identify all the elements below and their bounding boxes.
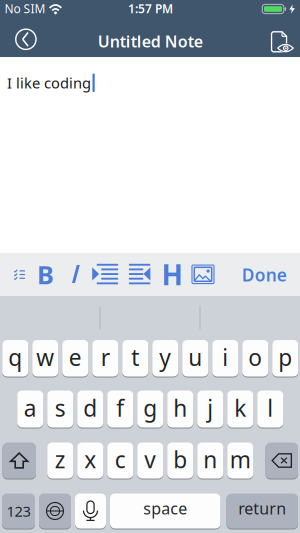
button[interactable] xyxy=(11,266,29,284)
button[interactable]: H xyxy=(160,259,184,289)
button[interactable]: B xyxy=(34,259,56,289)
button[interactable]: l xyxy=(257,390,283,428)
button[interactable]: space xyxy=(110,493,220,529)
button[interactable] xyxy=(92,262,118,286)
button[interactable]: 123 xyxy=(2,493,35,529)
staticText: o xyxy=(248,342,262,372)
button[interactable]: f xyxy=(107,390,133,428)
button[interactable] xyxy=(2,442,36,479)
staticText: w xyxy=(36,342,54,372)
staticText: return xyxy=(238,498,286,519)
button[interactable]: h xyxy=(167,390,193,428)
staticText: No SIM xyxy=(4,0,45,16)
staticText: m xyxy=(230,444,251,474)
staticText: d xyxy=(83,393,97,423)
staticText: 123 xyxy=(6,501,30,521)
button[interactable]: g xyxy=(137,390,163,428)
staticText: I like coding xyxy=(7,73,91,92)
button[interactable]: k xyxy=(227,390,253,428)
staticText: B xyxy=(37,258,54,291)
button[interactable] xyxy=(11,24,41,54)
button[interactable]: n xyxy=(197,442,223,479)
button[interactable]: t xyxy=(122,339,148,377)
button[interactable]: r xyxy=(92,339,118,377)
button[interactable]: y xyxy=(152,339,178,377)
staticText: s xyxy=(55,393,66,423)
staticText: z xyxy=(55,444,66,474)
button[interactable]: e xyxy=(62,339,88,377)
button[interactable]: d xyxy=(77,390,103,428)
button[interactable]: b xyxy=(167,442,193,479)
staticText: t xyxy=(131,342,139,372)
staticText: x xyxy=(84,444,96,474)
button[interactable]: w xyxy=(32,339,58,377)
button[interactable] xyxy=(72,265,80,283)
button[interactable]: x xyxy=(77,442,103,479)
button[interactable] xyxy=(129,262,150,286)
staticText: v xyxy=(144,444,156,474)
staticText: i xyxy=(222,342,228,372)
button[interactable]: Done xyxy=(233,260,295,290)
staticText: Done xyxy=(242,263,287,286)
staticText: j xyxy=(207,393,213,423)
button[interactable]: a xyxy=(17,390,43,428)
button[interactable] xyxy=(265,442,298,479)
staticText: a xyxy=(24,393,37,423)
staticText: n xyxy=(203,444,217,474)
staticText: Untitled Note xyxy=(98,31,203,52)
staticText: b xyxy=(173,444,187,474)
button[interactable]: u xyxy=(182,339,208,377)
staticText: q xyxy=(8,342,22,372)
staticText: e xyxy=(69,342,82,372)
button[interactable]: z xyxy=(47,442,73,479)
button[interactable]: j xyxy=(197,390,223,428)
button[interactable]: i xyxy=(212,339,238,377)
button[interactable] xyxy=(75,493,106,529)
button[interactable]: return xyxy=(226,493,298,529)
button[interactable]: m xyxy=(227,442,253,479)
staticText: u xyxy=(188,342,202,372)
button[interactable]: q xyxy=(2,339,28,377)
staticText: H xyxy=(161,256,182,293)
staticText: y xyxy=(159,342,171,372)
staticText: space xyxy=(143,498,187,519)
button[interactable] xyxy=(39,493,71,529)
staticText: f xyxy=(116,393,124,423)
staticText: p xyxy=(278,342,292,372)
button[interactable]: v xyxy=(137,442,163,479)
button[interactable] xyxy=(259,28,289,52)
button[interactable]: p xyxy=(272,339,298,377)
staticText: h xyxy=(173,393,187,423)
button[interactable]: c xyxy=(107,442,133,479)
staticText: r xyxy=(101,342,110,372)
button[interactable] xyxy=(192,265,214,284)
staticText: l xyxy=(267,393,273,423)
button[interactable]: s xyxy=(47,390,73,428)
button[interactable]: o xyxy=(242,339,268,377)
staticText: k xyxy=(234,393,246,423)
staticText: c xyxy=(115,444,126,474)
staticText: g xyxy=(143,393,157,423)
staticText: 1:57 PM xyxy=(128,0,173,16)
